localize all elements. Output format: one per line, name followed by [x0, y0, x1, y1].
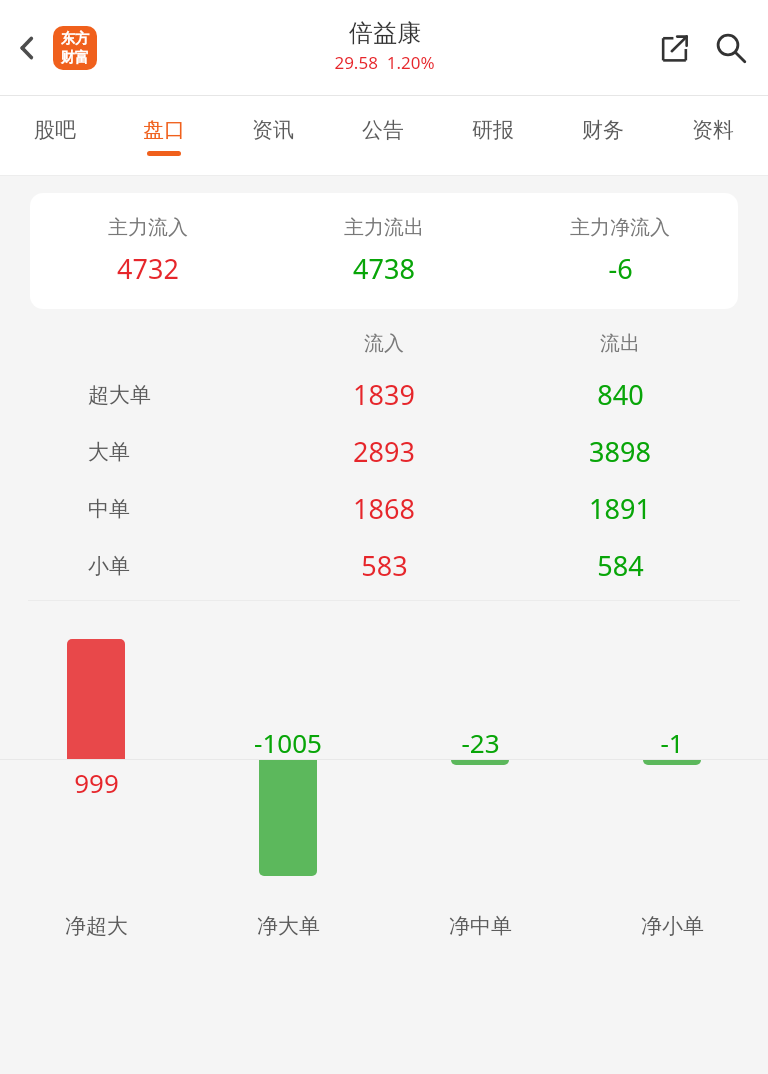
- button[interactable]: 资讯: [218, 96, 328, 176]
- staticText: 大单: [88, 439, 130, 465]
- staticText: 583: [361, 547, 408, 584]
- staticText: 盘口: [143, 117, 185, 143]
- staticText: 999: [74, 765, 119, 800]
- button[interactable]: Share: [648, 22, 700, 74]
- staticText: 1891: [589, 490, 651, 527]
- staticText: 2893: [353, 433, 415, 470]
- button[interactable]: 公告: [328, 96, 438, 176]
- staticText: 净超大: [65, 913, 128, 939]
- staticText: 净中单: [449, 913, 512, 939]
- staticText: 超大单: [88, 382, 151, 408]
- staticText: 中单: [88, 496, 130, 522]
- staticText: -6: [608, 250, 633, 287]
- staticText: 3898: [589, 433, 651, 470]
- staticText: 主力净流入: [570, 215, 670, 240]
- button[interactable]: 财务: [548, 96, 658, 176]
- staticText: -23: [461, 725, 500, 760]
- staticText: 公告: [362, 117, 404, 143]
- button[interactable]: Search: [704, 21, 758, 75]
- staticText: 29.58 1.20%: [334, 51, 435, 74]
- staticText: 840: [597, 376, 644, 413]
- button[interactable]: Back: [4, 25, 50, 71]
- staticText: 财富: [61, 49, 89, 67]
- button[interactable]: 主力流入: [30, 215, 738, 287]
- staticText: -1005: [254, 725, 322, 760]
- button[interactable]: 资料: [658, 96, 768, 176]
- staticText: 倍益康: [349, 18, 421, 48]
- button[interactable]: East Money: [53, 26, 97, 70]
- button[interactable]: 大单: [88, 433, 738, 470]
- staticText: 1839: [353, 376, 415, 413]
- staticText: 主力流出: [344, 215, 424, 240]
- staticText: 财务: [582, 117, 624, 143]
- staticText: 小单: [88, 553, 130, 579]
- button[interactable]: 股吧: [0, 96, 109, 176]
- button[interactable]: 中单: [88, 490, 738, 527]
- staticText: 资讯: [252, 117, 294, 143]
- staticText: -1: [660, 725, 684, 760]
- button[interactable]: 小单: [88, 547, 738, 584]
- button[interactable]: 盘口: [109, 96, 218, 176]
- staticText: 研报: [472, 117, 514, 143]
- staticText: 流入: [364, 331, 404, 356]
- staticText: 4732: [117, 250, 179, 287]
- staticText: 1868: [353, 490, 415, 527]
- staticText: 主力流入: [108, 215, 188, 240]
- staticText: 股吧: [34, 117, 76, 143]
- button[interactable]: 研报: [438, 96, 548, 176]
- staticText: 4738: [353, 250, 415, 287]
- staticText: 584: [597, 547, 644, 584]
- staticText: 东方: [61, 30, 89, 48]
- staticText: 净小单: [641, 913, 704, 939]
- staticText: 流出: [600, 331, 640, 356]
- button[interactable]: 超大单: [88, 376, 738, 413]
- staticText: 净大单: [257, 913, 320, 939]
- staticText: 资料: [692, 117, 734, 143]
